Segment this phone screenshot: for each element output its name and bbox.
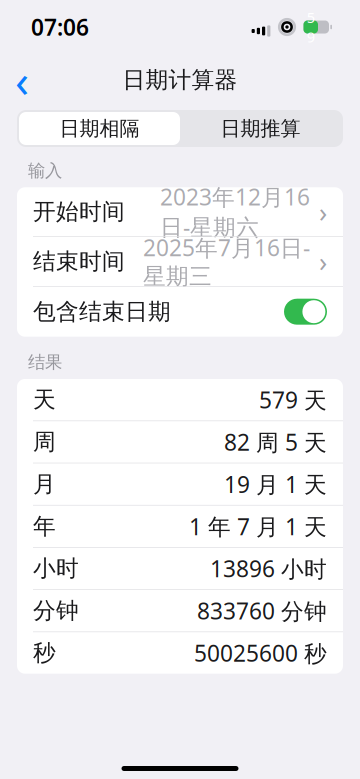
- staticText: 周: [33, 428, 56, 456]
- staticText: 2025年7月16日-星期三: [143, 232, 310, 290]
- staticText: 82 周 5 天: [224, 427, 327, 457]
- button[interactable]: 日期推算: [180, 112, 341, 145]
- button[interactable]: 结束时间: [17, 237, 343, 286]
- staticText: 日期推算: [220, 116, 300, 141]
- staticText: 包含结束日期: [33, 298, 171, 326]
- staticText: 小时: [33, 555, 79, 582]
- staticText: 07:06: [31, 12, 89, 42]
- staticText: ›: [319, 194, 327, 229]
- button[interactable]: 包含结束日期: [17, 287, 343, 337]
- staticText: 开始时间: [33, 198, 125, 226]
- staticText: 年: [33, 512, 56, 540]
- staticText: 日期计算器: [122, 66, 237, 94]
- button[interactable]: 返回: [0, 58, 44, 102]
- staticText: 2023年12月16日-星期六: [160, 182, 310, 242]
- staticText: 19 月 1 天: [224, 469, 327, 499]
- staticText: 13896 小时: [210, 553, 327, 584]
- button[interactable]: 日期相隔: [19, 112, 180, 145]
- staticText: 天: [33, 386, 56, 414]
- staticText: ›: [319, 244, 327, 279]
- staticText: 分钟: [33, 597, 79, 625]
- staticText: ‹: [15, 50, 29, 110]
- staticText: 59: [307, 7, 315, 46]
- staticText: 结果: [28, 352, 62, 373]
- staticText: 50025600 秒: [194, 638, 327, 668]
- staticText: 579 天: [259, 385, 327, 415]
- staticText: 1 年 7 月 1 天: [189, 511, 327, 541]
- staticText: 月: [33, 470, 56, 498]
- staticText: 结束时间: [33, 248, 125, 275]
- staticText: 输入: [28, 160, 62, 181]
- button[interactable]: 开始时间: [17, 187, 343, 236]
- staticText: 秒: [33, 639, 56, 667]
- staticText: 日期相隔: [59, 116, 139, 141]
- staticText: 833760 分钟: [197, 596, 327, 626]
